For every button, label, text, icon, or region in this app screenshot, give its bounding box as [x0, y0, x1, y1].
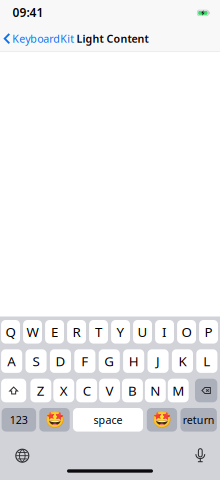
staticText: D — [55, 352, 65, 370]
button[interactable]: E — [45, 320, 64, 344]
button[interactable]: P — [199, 320, 218, 344]
button[interactable]: return — [180, 408, 217, 432]
staticText: return — [183, 413, 215, 427]
staticText: B — [128, 382, 137, 399]
staticText: 09:41 — [12, 4, 43, 20]
button[interactable]: Shift — [1, 379, 26, 402]
button[interactable]: M — [168, 379, 189, 402]
staticText: space — [93, 413, 122, 427]
staticText: L — [203, 352, 210, 370]
staticText: F — [81, 352, 88, 370]
staticText: X — [60, 382, 68, 399]
staticText: H — [129, 352, 139, 370]
staticText: E — [51, 323, 58, 341]
button[interactable]: I — [155, 320, 174, 344]
staticText: O — [181, 323, 191, 341]
button[interactable]: Q — [1, 320, 20, 344]
button[interactable]: Emoji — [147, 408, 177, 432]
button[interactable]: T — [89, 320, 108, 344]
button[interactable]: R — [67, 320, 86, 344]
button[interactable]: F — [74, 349, 95, 373]
button[interactable]: G — [99, 349, 120, 373]
staticText: 🤩 — [44, 411, 64, 429]
button[interactable]: V — [99, 379, 120, 402]
staticText: V — [105, 382, 113, 399]
button[interactable]: Z — [30, 379, 51, 402]
staticText: J — [156, 352, 160, 370]
staticText: Y — [116, 323, 124, 341]
staticText: Light Content — [76, 31, 148, 46]
staticText: A — [7, 352, 16, 370]
staticText: W — [26, 323, 38, 341]
button[interactable]: Emoji — [39, 408, 70, 432]
staticText: R — [72, 323, 80, 341]
button[interactable]: K — [172, 349, 193, 373]
button[interactable]: Y — [111, 320, 130, 344]
staticText: Z — [37, 382, 45, 399]
staticText: I — [162, 323, 167, 341]
button[interactable]: Next keyboard — [7, 444, 37, 468]
staticText: C — [83, 382, 91, 399]
staticText: Q — [5, 323, 15, 341]
staticText: 🤩 — [152, 411, 172, 429]
button[interactable]: Delete — [195, 379, 217, 402]
button[interactable]: O — [177, 320, 196, 344]
staticText: P — [204, 323, 212, 341]
button[interactable]: S — [25, 349, 47, 373]
button[interactable]: J — [147, 349, 169, 373]
staticText: T — [95, 323, 102, 341]
button[interactable]: A — [1, 349, 22, 373]
staticText: 123 — [10, 413, 28, 427]
button[interactable]: W — [23, 320, 42, 344]
staticText: KeyboardKit — [12, 31, 74, 46]
button[interactable]: space — [73, 408, 143, 432]
staticText: G — [104, 352, 114, 370]
staticText: K — [178, 352, 186, 370]
staticText: M — [172, 382, 184, 399]
button[interactable]: L — [196, 349, 217, 373]
button[interactable]: B — [122, 379, 143, 402]
button[interactable]: D — [50, 349, 71, 373]
staticText: N — [150, 382, 160, 399]
button[interactable]: Dictation — [185, 443, 215, 467]
button[interactable]: H — [123, 349, 144, 373]
button[interactable]: C — [76, 379, 97, 402]
button[interactable]: KeyboardKit — [0, 27, 78, 51]
button[interactable]: X — [53, 379, 74, 402]
staticText: U — [137, 323, 147, 341]
staticText: S — [32, 352, 39, 370]
button[interactable]: U — [133, 320, 152, 344]
button[interactable]: 123 — [2, 408, 36, 432]
button[interactable]: N — [145, 379, 166, 402]
